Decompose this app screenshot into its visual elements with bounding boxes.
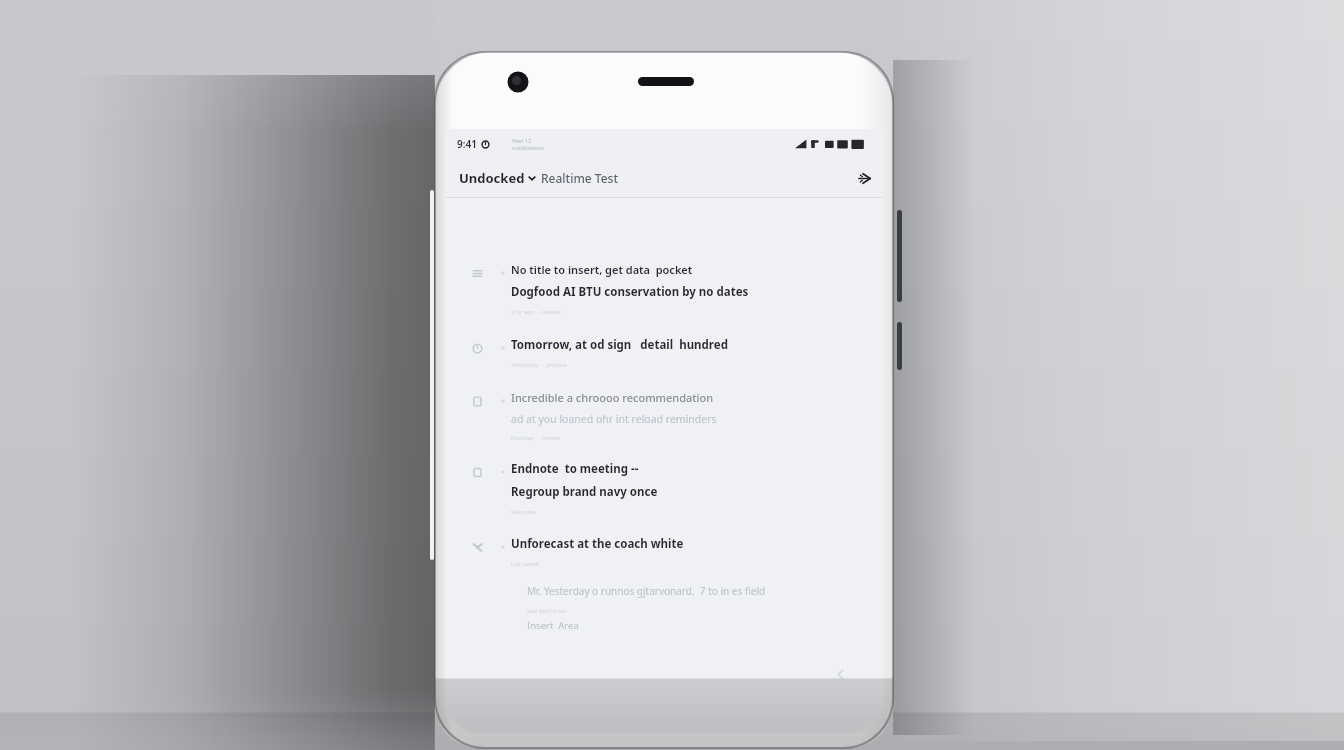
staticText: Realtime Test	[541, 170, 619, 186]
staticText: Wed 12	[512, 137, 532, 144]
staticText: Incredible a chroooo recommendation	[511, 390, 714, 405]
button[interactable]: Endnote to meeting --	[445, 459, 883, 518]
button[interactable]: Send	[845, 159, 883, 197]
staticText: Tomorrow, at od sign detail hundred	[511, 337, 728, 353]
staticText: you field ones	[527, 607, 567, 615]
staticText: 2 hr ago · review	[511, 308, 561, 316]
staticText: ad at you loaned ohr int reload reminder…	[511, 412, 717, 426]
staticText: Undocked	[459, 169, 525, 187]
staticText: Last week	[511, 560, 539, 568]
button[interactable]: Volume	[897, 210, 902, 302]
staticText: Yesterday · archive	[511, 361, 567, 369]
staticText: Unforecast at the coach white	[511, 536, 684, 552]
button[interactable]: Unforecast at the coach white	[445, 534, 883, 570]
staticText: Regroup brand navy once	[511, 484, 658, 500]
staticText: Endnote to meeting --	[511, 461, 639, 477]
button[interactable]: Power	[897, 322, 902, 370]
button[interactable]: Back	[827, 661, 853, 687]
staticText: Saturday	[511, 508, 537, 516]
button[interactable]: Tomorrow, at od sign detail hundred	[445, 335, 883, 371]
button[interactable]: Undocked	[445, 169, 845, 187]
button[interactable]: No title to insert, get data pocket	[445, 260, 883, 318]
staticText: Insert Area	[527, 619, 579, 632]
staticText: 9:41	[457, 137, 477, 151]
staticText: Monday · muted	[511, 434, 561, 442]
button[interactable]: Incredible a chroooo recommendation	[445, 388, 883, 444]
staticText: notifications	[512, 144, 544, 151]
staticText: Dogfood AI BTU conservation by no dates	[511, 284, 749, 300]
staticText: Mr. Yesterday o runnos gjtarvonard. 7 to…	[527, 584, 766, 598]
staticText: No title to insert, get data pocket	[511, 262, 693, 277]
